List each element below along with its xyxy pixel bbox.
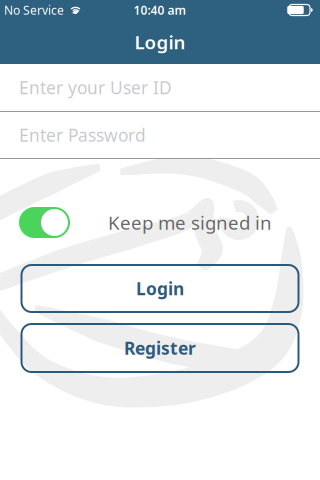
staticText: 10:40 am <box>133 2 186 18</box>
staticText: Login <box>136 277 184 300</box>
staticText: Register <box>124 336 196 359</box>
button[interactable]: Enter your User ID <box>0 64 320 111</box>
staticText: Enter your User ID <box>19 76 172 99</box>
button[interactable]: Enter Password <box>0 112 320 158</box>
button[interactable]: Login <box>21 265 298 312</box>
button[interactable]: Register <box>21 324 298 372</box>
staticText: Login <box>134 30 185 54</box>
staticText: Enter Password <box>19 123 146 146</box>
staticText: Keep me signed in <box>108 210 272 235</box>
staticText: No Service <box>4 2 64 18</box>
button[interactable]: Keep me signed in <box>19 207 70 238</box>
